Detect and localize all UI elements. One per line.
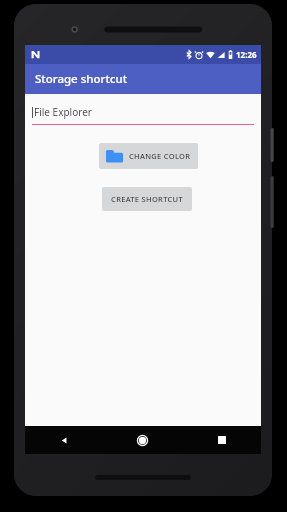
button[interactable]: File Explorer: [32, 105, 254, 125]
button[interactable]: Back: [25, 426, 103, 454]
staticText: Storage shortcut: [35, 71, 128, 87]
button[interactable]: Recent apps: [182, 426, 261, 454]
button[interactable]: Home: [103, 426, 182, 454]
button[interactable]: CREATE SHORTCUT: [102, 187, 192, 211]
button[interactable]: CHANGE COLOR: [99, 143, 198, 169]
staticText: CREATE SHORTCUT: [111, 194, 183, 204]
staticText: CHANGE COLOR: [129, 151, 191, 161]
staticText: 12:26: [236, 49, 257, 60]
staticText: File Explorer: [34, 105, 92, 119]
